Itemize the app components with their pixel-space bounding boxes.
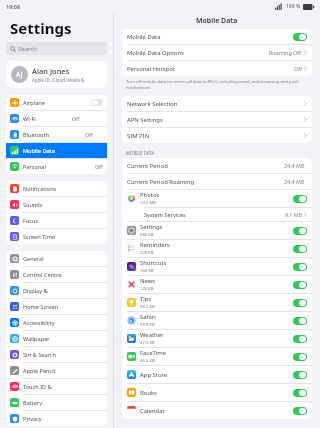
staticText: 13.9 MB [140,200,156,206]
staticText: Mobile Data [196,16,238,26]
button[interactable]: Calendar [122,402,312,419]
staticText: Off [85,131,93,138]
staticText: Personal Hotspot [127,65,175,73]
button[interactable]: APN Settings [122,112,312,127]
staticText: Turn off mobile data to restrict all dat… [126,79,308,90]
staticText: Focus [23,217,39,225]
button[interactable]: Search [6,42,107,55]
button[interactable]: App Store [122,366,312,383]
staticText: System Services [144,211,186,219]
button[interactable]: FaceTime [122,348,312,365]
button[interactable]: Accessibility [6,315,107,330]
staticText: Sounds [23,201,43,209]
button[interactable]: Network Selection [122,96,312,111]
staticText: 125 KB [140,286,154,292]
staticText: 686 KB [140,232,154,238]
button[interactable]: Safari [122,312,312,329]
staticText: SIM PIN [127,132,150,140]
staticText: App Store [140,371,168,379]
staticText: Settings [10,18,72,38]
staticText: Touch ID & Passcode [23,383,63,391]
staticText: Photos [140,191,160,199]
staticText: Apple ID, iCloud, Media & Purchases [32,77,102,83]
button[interactable]: Home Screen & Dock [6,299,107,314]
staticText: Settings [140,223,163,231]
staticText: Airplane Mode [23,99,57,107]
button[interactable]: Notifications [6,181,107,196]
button[interactable]: SIM PIN [122,128,312,143]
staticText: MOBILE DATA [126,150,155,156]
button[interactable]: Control Centre [6,267,107,282]
staticText: Siri & Search [23,351,56,359]
button[interactable]: Focus [6,213,107,228]
staticText: Bluetooth [23,131,49,139]
button[interactable]: System Services [122,208,312,221]
staticText: 9.1 MB [285,211,302,218]
button[interactable]: Tips [122,294,312,311]
staticText: Off [294,65,302,72]
button[interactable]: Mobile Data Options [122,45,312,60]
button[interactable]: Display & Brightness [6,283,107,298]
button[interactable]: Books [122,384,312,401]
staticText: Privacy [23,415,42,423]
button[interactable]: Apple Pencil [6,363,107,378]
button[interactable]: Weather [122,330,312,347]
button[interactable]: Current Period [122,158,312,173]
staticText: News [140,277,156,285]
staticText: Personal Hotspot [23,163,59,171]
staticText: 160 KB [140,268,154,274]
staticText: Books [140,389,157,397]
staticText: Home Screen & Dock [23,303,63,311]
staticText: 100 % [286,3,301,10]
button[interactable]: Screen Time [6,229,107,244]
staticText: Network Selection [127,100,178,108]
button[interactable]: Personal Hotspot [122,61,312,76]
staticText: Shortcuts [140,259,167,267]
staticText: Weather [140,331,164,339]
button[interactable]: Mobile Data [122,29,312,44]
staticText: Roaming Off [269,49,302,56]
staticText: Accessibility [23,319,55,327]
button[interactable]: Privacy [6,411,107,426]
staticText: 58.8 KB [140,322,155,328]
button[interactable]: Bluetooth [6,127,107,142]
staticText: FaceTime [140,349,167,357]
staticText: Mobile Data [23,147,55,155]
button[interactable]: Airplane Mode [6,95,107,110]
button[interactable]: Sounds [6,197,107,212]
button[interactable]: AJ [6,61,107,88]
button[interactable]: Touch ID & Passcode [6,379,107,394]
staticText: Apple Pencil [23,367,56,375]
staticText: Notifications [23,185,57,193]
button[interactable]: Mobile Data [6,143,107,158]
button[interactable]: Battery [6,395,107,410]
staticText: Battery [23,399,43,407]
staticText: 98.2 KB [140,304,155,310]
staticText: 24.4 MB [284,162,305,169]
button[interactable]: Personal Hotspot [6,159,107,174]
staticText: Off [95,163,103,170]
button[interactable]: General [6,251,107,266]
staticText: Wallpaper [23,335,50,343]
staticText: APN Settings [127,116,163,124]
button[interactable]: News [122,276,312,293]
button[interactable]: Siri & Search [6,347,107,362]
button[interactable]: Settings [122,222,312,239]
button[interactable]: Photos [122,190,312,207]
staticText: 19:08 [6,3,21,10]
staticText: 47.5 KB [140,340,155,346]
staticText: Wi-Fi [23,115,36,123]
staticText: 228 KB [140,250,154,256]
staticText: General [23,255,44,263]
button[interactable]: Current Period Roaming [122,174,312,189]
button[interactable]: Wallpaper [6,331,107,346]
staticText: Current Period Roaming [127,178,195,186]
staticText: Alan Jones [32,66,70,76]
button[interactable]: Reminders [122,240,312,257]
staticText: Current Period [127,162,168,170]
staticText: Control Centre [23,271,62,279]
staticText: Tips [140,295,152,303]
staticText: Search [18,45,37,53]
button[interactable]: Shortcuts [122,258,312,275]
button[interactable]: Wi-Fi [6,111,107,126]
